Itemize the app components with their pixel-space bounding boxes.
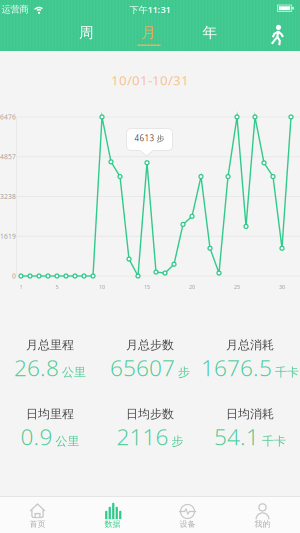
staticText: 25 (234, 283, 240, 291)
staticText: 26.8 (14, 352, 59, 382)
staticText: 30 (279, 283, 285, 291)
staticText: 20 (189, 283, 195, 291)
staticText: 公里 (62, 365, 86, 380)
staticText: 设备 (179, 519, 195, 529)
staticText: 1 (19, 283, 22, 291)
staticText: 0.9 (20, 421, 52, 451)
staticText: 4613 步 (134, 133, 164, 143)
button[interactable]: 月 (129, 19, 169, 51)
staticText: 我的 (254, 519, 270, 529)
staticText: 2116 (116, 421, 168, 451)
staticText: 年 (202, 23, 217, 41)
staticText: 10/01-10/31 (111, 71, 189, 89)
button[interactable]: 我的 (225, 496, 300, 533)
staticText: 1676.5 (201, 352, 272, 382)
staticText: 1619 (0, 232, 16, 241)
staticText: 月总里程 (26, 338, 74, 352)
staticText: 日均里程 (26, 407, 74, 421)
staticText: 公里 (55, 434, 79, 449)
staticText: 月总消耗 (226, 338, 274, 352)
staticText: 数据 (104, 519, 120, 529)
staticText: 首页 (29, 519, 45, 529)
button[interactable]: 首页 (0, 496, 75, 533)
button[interactable] (267, 22, 289, 48)
button[interactable]: 数据 (75, 496, 150, 533)
staticText: 15 (144, 283, 150, 291)
staticText: 日均消耗 (226, 407, 274, 421)
staticText: 步 (178, 365, 190, 380)
staticText: 65607 (110, 352, 175, 382)
staticText: 4857 (0, 152, 16, 161)
staticText: 5 (55, 283, 58, 291)
staticText: 3238 (0, 192, 16, 201)
button[interactable]: 年 (190, 19, 230, 51)
staticText: 步 (171, 434, 183, 449)
button[interactable]: 设备 (150, 496, 225, 533)
staticText: 日均步数 (126, 407, 174, 421)
staticText: 千卡 (262, 434, 286, 449)
staticText: 10 (99, 283, 105, 291)
staticText: 0 (12, 272, 16, 280)
button[interactable]: 周 (66, 19, 106, 51)
staticText: 周 (79, 23, 94, 41)
staticText: 54.1 (214, 421, 259, 451)
staticText: 月总步数 (126, 338, 174, 352)
staticText: 下午11:31 (129, 3, 170, 16)
staticText: 运营商 (1, 4, 28, 15)
staticText: 千卡 (275, 365, 299, 380)
staticText: 6476 (0, 113, 16, 121)
staticText: 月 (141, 23, 156, 41)
